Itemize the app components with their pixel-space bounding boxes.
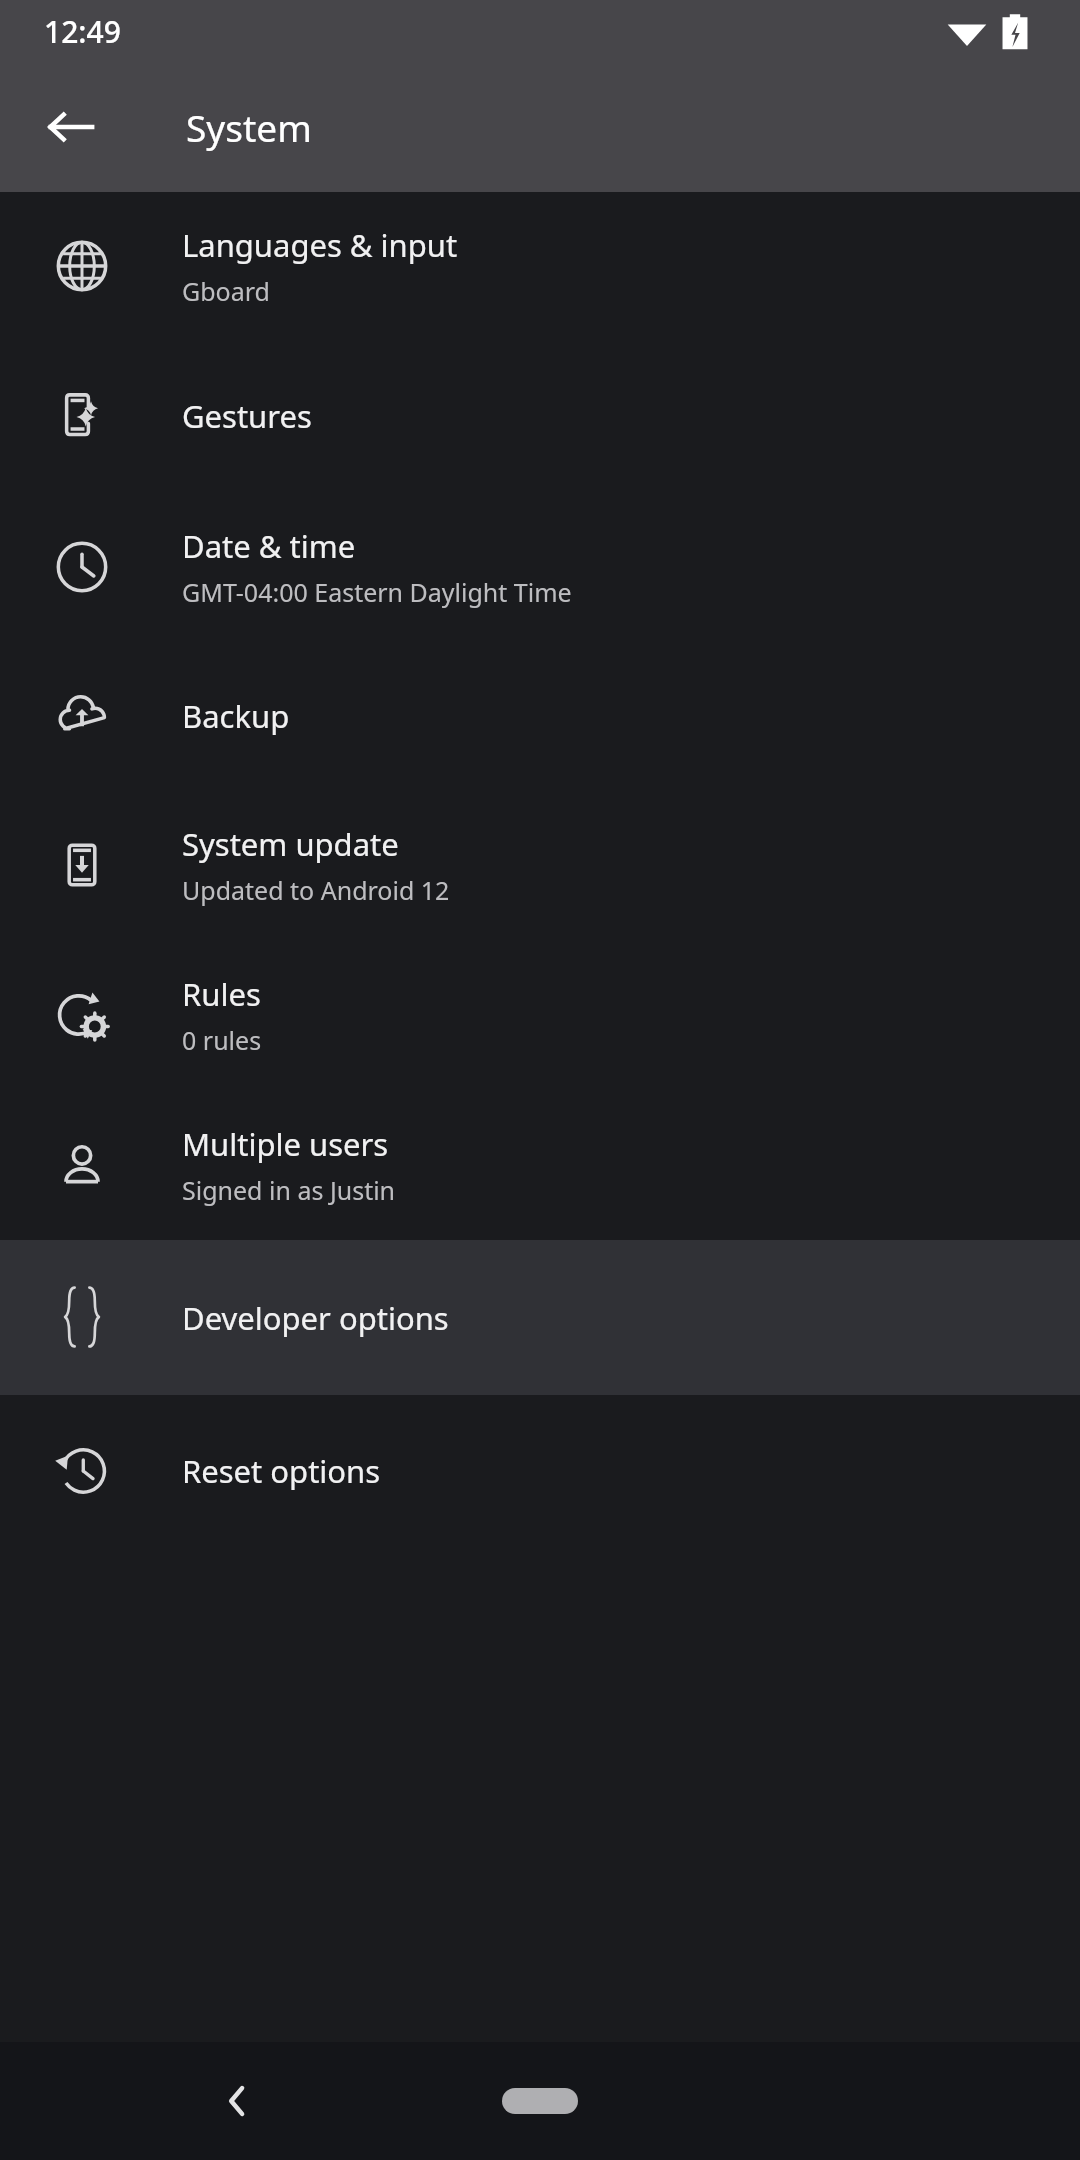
staticText: Rules: [182, 973, 261, 1015]
button[interactable]: Developer options: [0, 1240, 1080, 1395]
button[interactable]: Rules: [0, 940, 1080, 1090]
staticText: Date & time: [182, 525, 356, 567]
staticText: 12:49: [44, 11, 121, 52]
button[interactable]: Backup: [0, 642, 1080, 790]
button[interactable]: Gestures: [0, 340, 1080, 492]
button[interactable]: System update: [0, 790, 1080, 940]
button[interactable]: Home: [460, 2066, 620, 2136]
staticText: Reset options: [182, 1450, 381, 1492]
staticText: Backup: [182, 695, 290, 737]
button[interactable]: Languages & input: [0, 192, 1080, 340]
button[interactable]: Back: [26, 82, 116, 172]
staticText: Signed in as Justin: [182, 1173, 396, 1207]
staticText: Developer options: [182, 1297, 449, 1339]
staticText: Gestures: [182, 395, 312, 437]
staticText: System: [186, 102, 312, 152]
button[interactable]: Back: [190, 2053, 286, 2149]
button[interactable]: Multiple users: [0, 1090, 1080, 1240]
button[interactable]: Date & time: [0, 492, 1080, 642]
staticText: Gboard: [182, 274, 270, 308]
staticText: 0 rules: [182, 1023, 262, 1057]
staticText: GMT-04:00 Eastern Daylight Time: [182, 575, 572, 609]
staticText: Languages & input: [182, 224, 458, 266]
staticText: System update: [182, 823, 399, 865]
staticText: Updated to Android 12: [182, 873, 450, 907]
button[interactable]: Reset options: [0, 1395, 1080, 1547]
staticText: Multiple users: [182, 1123, 389, 1165]
